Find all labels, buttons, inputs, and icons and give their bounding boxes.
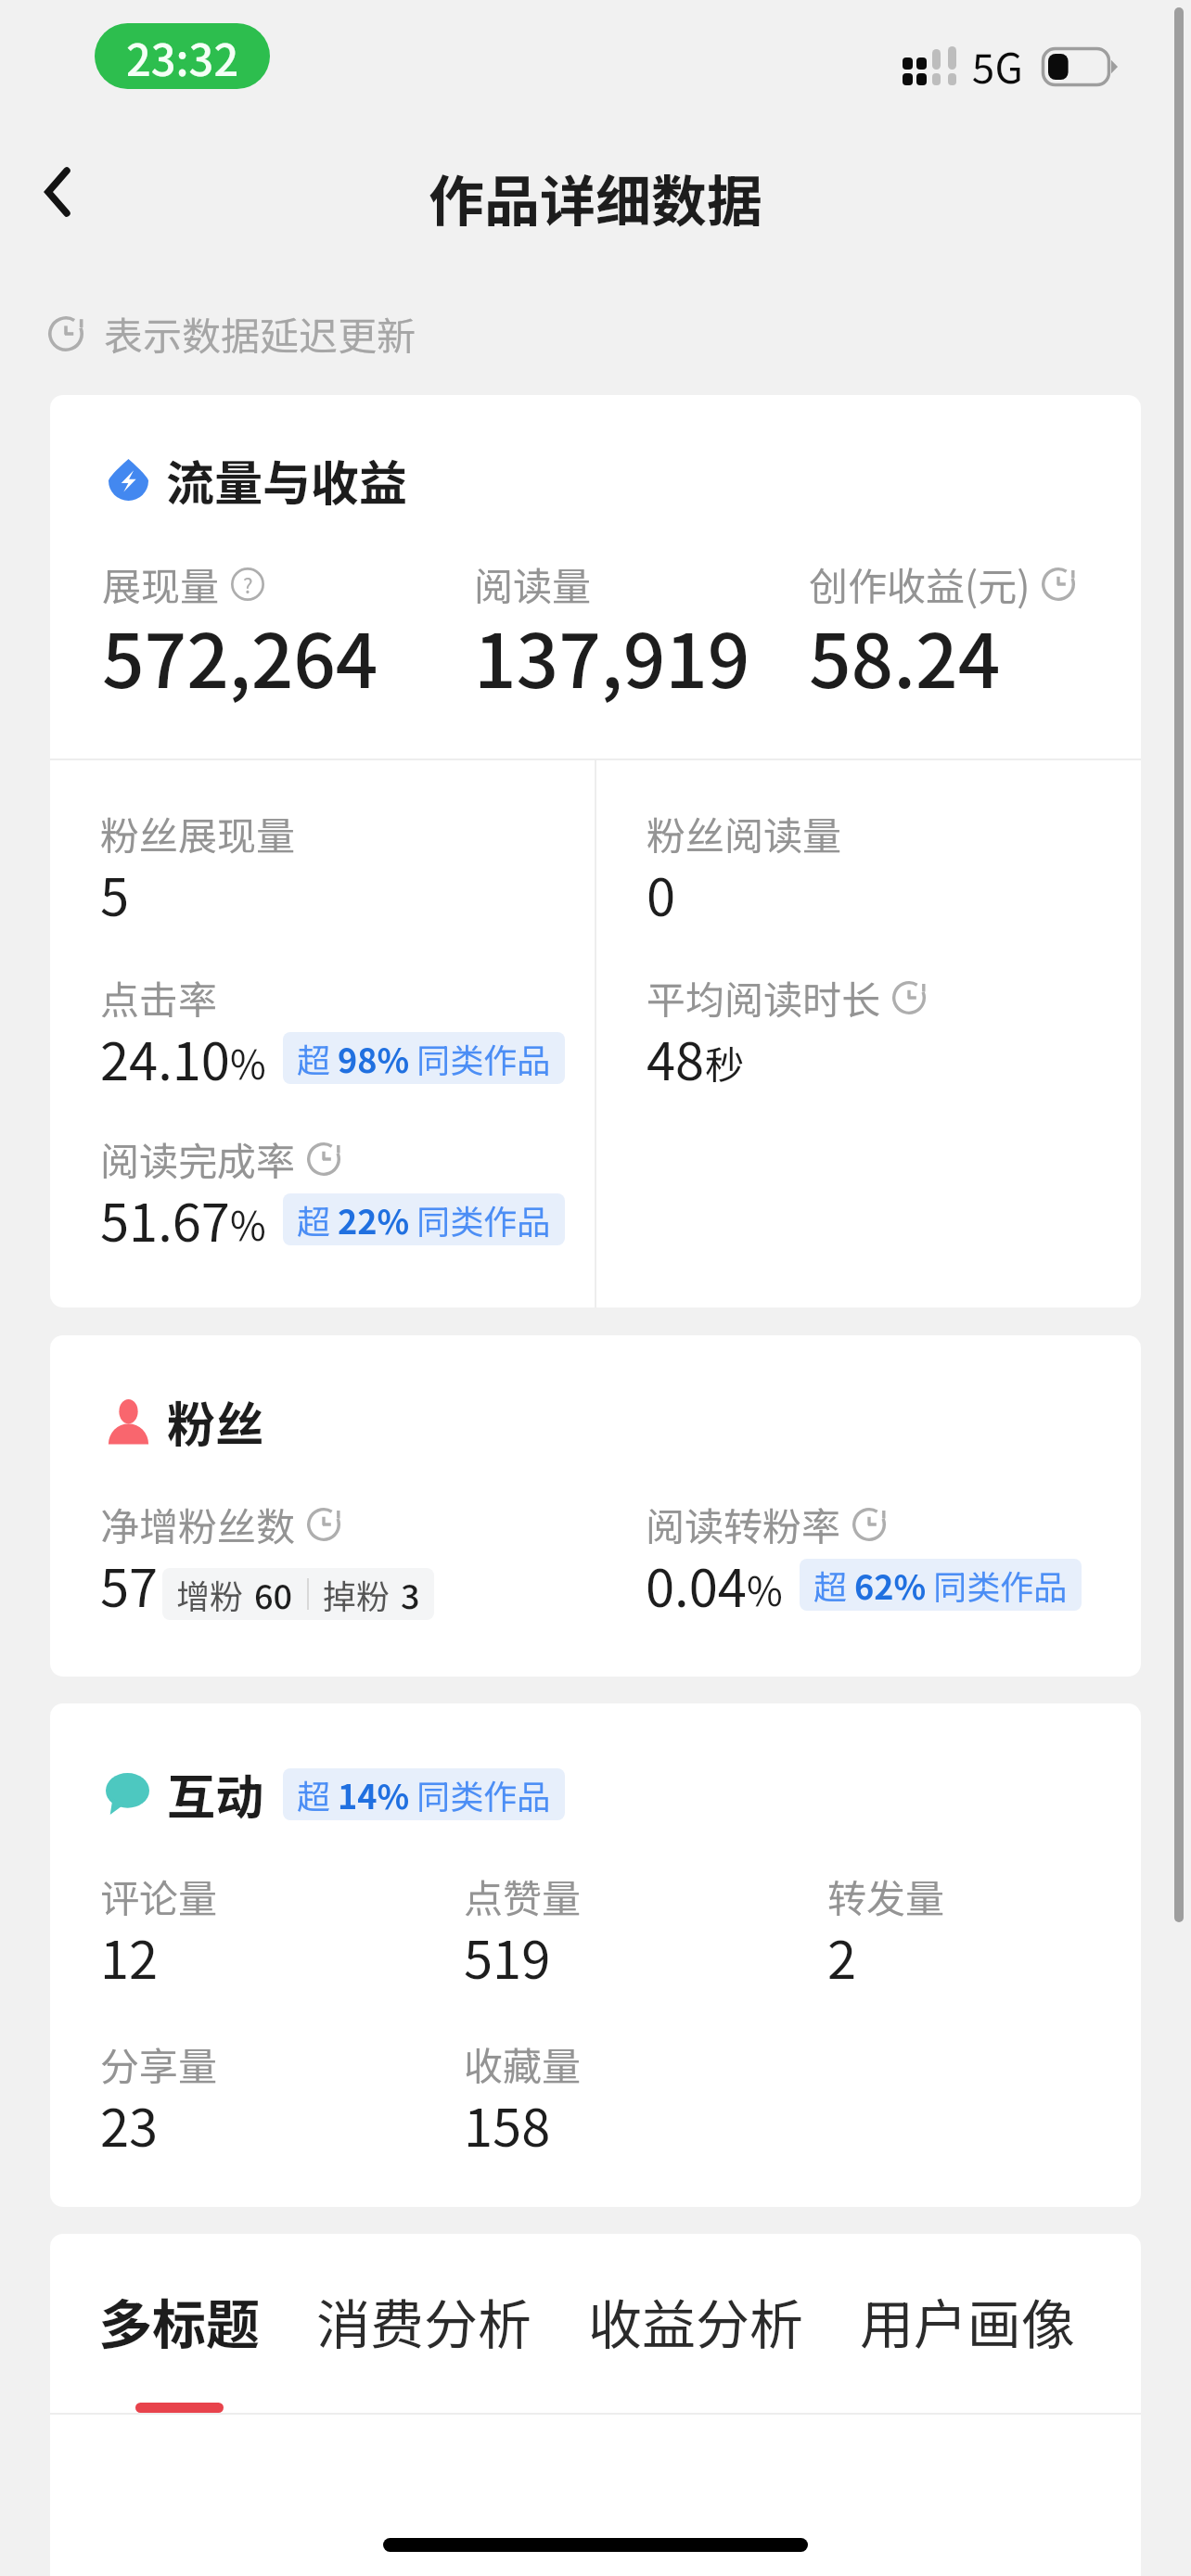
- button[interactable]: 收益分析: [588, 2282, 804, 2413]
- staticText: 粉丝阅读量: [647, 805, 842, 861]
- staticText: 评论量: [100, 1868, 218, 1924]
- staticText: 粉丝展现量: [100, 805, 296, 861]
- staticText: 23: [100, 2086, 159, 2162]
- staticText: 净增粉丝数: [100, 1496, 296, 1552]
- staticText: ?: [243, 569, 253, 599]
- staticText: 0: [647, 856, 676, 931]
- staticText: 平均阅读时长: [647, 969, 881, 1026]
- staticText: 作品详细数据: [429, 157, 762, 237]
- staticText: 58.24: [809, 602, 1001, 709]
- staticText: 137,919: [474, 602, 750, 709]
- staticText: %: [230, 1195, 266, 1252]
- staticText: %: [747, 1561, 783, 1617]
- staticText: 超 62% 同类作品: [813, 1561, 1068, 1609]
- staticText: 创作收益(元): [809, 555, 1031, 612]
- staticText: 阅读量: [474, 555, 592, 612]
- staticText: 阅读转粉率: [646, 1496, 841, 1552]
- staticText: 158: [464, 2086, 551, 2162]
- staticText: 5: [100, 856, 130, 931]
- staticText: 2: [827, 1919, 857, 1994]
- staticText: 24.10: [100, 1020, 230, 1095]
- staticText: 超 98% 同类作品: [297, 1034, 551, 1082]
- staticText: 粉丝: [167, 1386, 264, 1456]
- staticText: 0.04: [646, 1547, 747, 1622]
- staticText: 收益分析: [588, 2282, 804, 2360]
- staticText: 增粉: [176, 1570, 244, 1618]
- staticText: 秒: [705, 1034, 745, 1090]
- button[interactable]: Back: [13, 147, 102, 236]
- staticText: 48: [647, 1020, 705, 1095]
- button[interactable]: 消费分析: [316, 2282, 532, 2413]
- staticText: 流量与收益: [166, 445, 408, 515]
- staticText: 23:32: [126, 25, 239, 88]
- button[interactable]: 用户画像: [860, 2282, 1076, 2413]
- staticText: 阅读完成率: [100, 1130, 296, 1187]
- staticText: 572,264: [102, 602, 378, 709]
- staticText: 60: [254, 1570, 293, 1618]
- button[interactable]: 多标题: [98, 2282, 261, 2413]
- staticText: 12: [100, 1919, 159, 1994]
- staticText: 多标题: [98, 2282, 261, 2360]
- staticText: 3: [401, 1570, 420, 1618]
- staticText: 分享量: [100, 2035, 218, 2092]
- staticText: 点赞量: [464, 1868, 582, 1924]
- staticText: %: [230, 1034, 266, 1090]
- staticText: 5G: [972, 36, 1023, 96]
- staticText: 转发量: [827, 1868, 945, 1924]
- staticText: 超 14% 同类作品: [297, 1770, 551, 1818]
- staticText: 519: [464, 1919, 551, 1994]
- staticText: 点击率: [100, 969, 218, 1026]
- staticText: 展现量: [102, 555, 220, 612]
- staticText: 掉粉: [323, 1570, 391, 1618]
- staticText: 超 22% 同类作品: [297, 1195, 551, 1243]
- staticText: 消费分析: [316, 2282, 532, 2360]
- staticText: 51.67: [100, 1181, 230, 1256]
- staticText: 收藏量: [464, 2035, 582, 2092]
- staticText: 用户画像: [860, 2282, 1076, 2360]
- staticText: 互动: [167, 1759, 264, 1829]
- staticText: 表示数据延迟更新: [104, 305, 416, 362]
- staticText: 57: [100, 1547, 159, 1622]
